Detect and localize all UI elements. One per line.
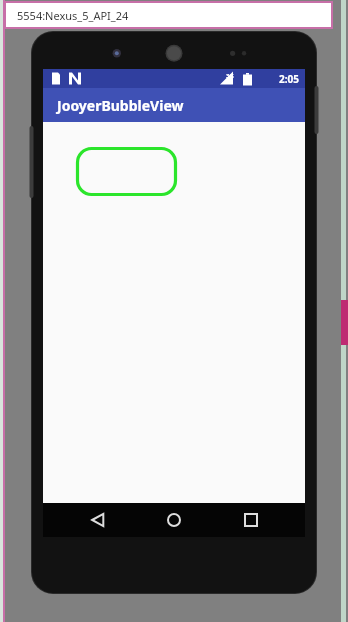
button[interactable]: Recent apps xyxy=(229,503,273,537)
staticText: 5554:Nexus_5_API_24 xyxy=(17,8,129,23)
staticText: JooyerBubbleView xyxy=(57,96,184,115)
button[interactable]: JooyerBubbleView xyxy=(43,88,305,122)
button[interactable]: Home xyxy=(152,503,196,537)
staticText: 2:05 xyxy=(279,72,299,86)
staticText: 3G xyxy=(226,72,234,80)
button[interactable]: Bubble view xyxy=(76,147,177,196)
button[interactable]: Back xyxy=(76,503,120,537)
